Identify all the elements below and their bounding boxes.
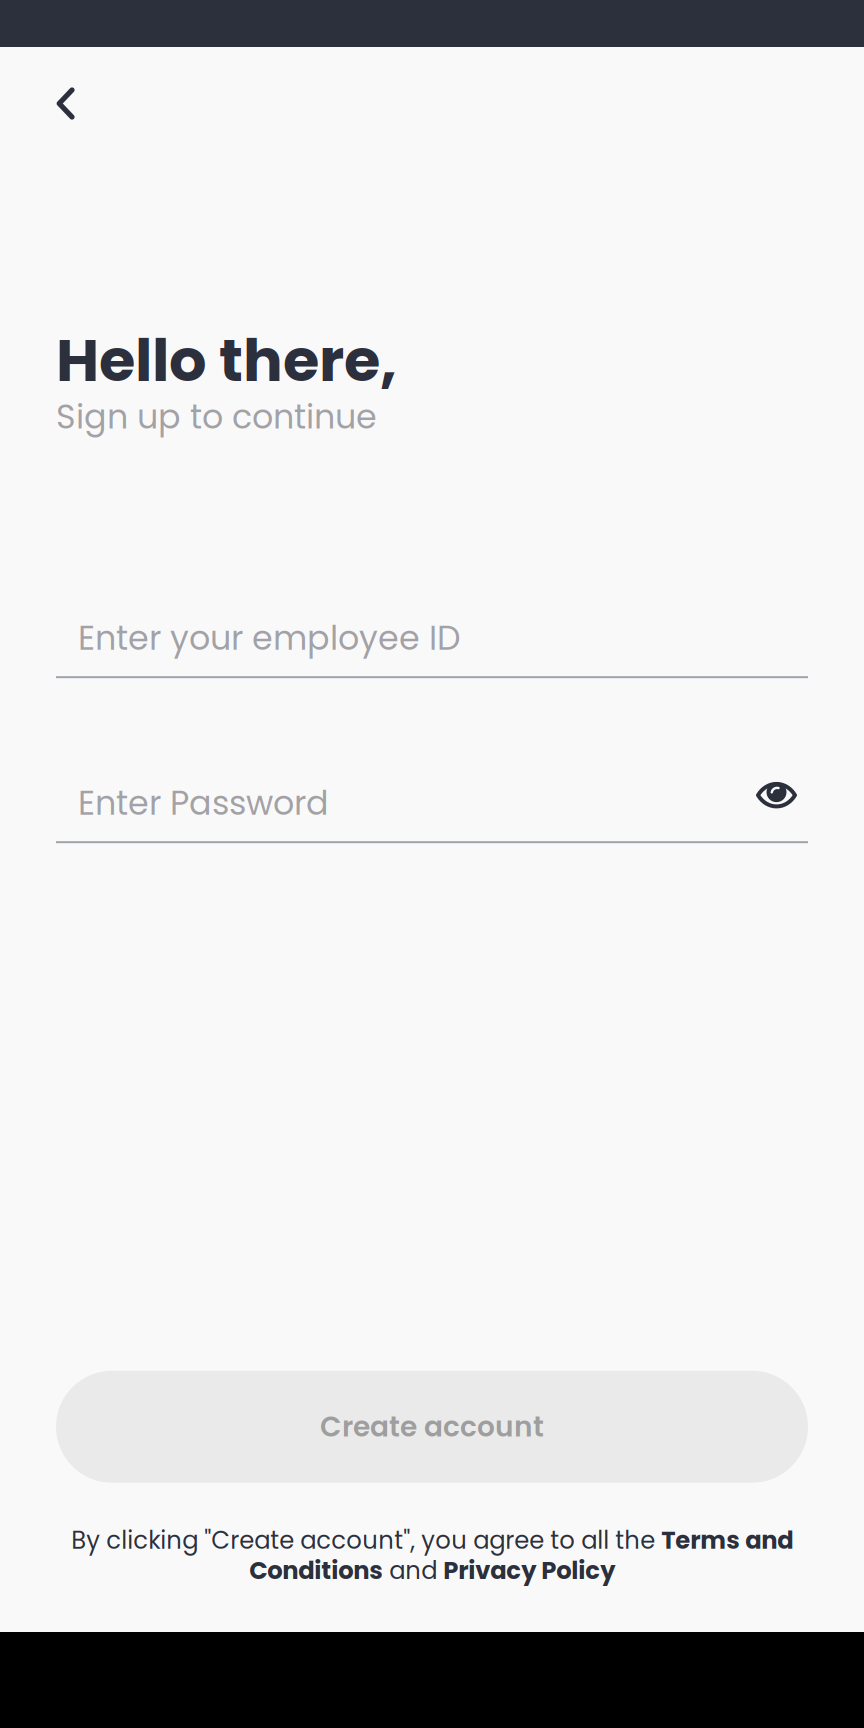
button[interactable]: Enter Password [56,779,756,827]
button[interactable]: Back [56,86,102,121]
button[interactable]: Enter your employee ID [56,614,808,662]
staticText: Sign up to continue [56,393,377,440]
staticText: Enter your employee ID [78,615,461,661]
button[interactable]: Show password [756,771,808,835]
staticText: By clicking "Create account", you agree … [71,1524,793,1587]
staticText: Enter Password [78,780,329,826]
staticText: Hello there, [56,319,397,401]
staticText: Create account [320,1407,544,1446]
button[interactable]: Create account [56,1371,808,1483]
